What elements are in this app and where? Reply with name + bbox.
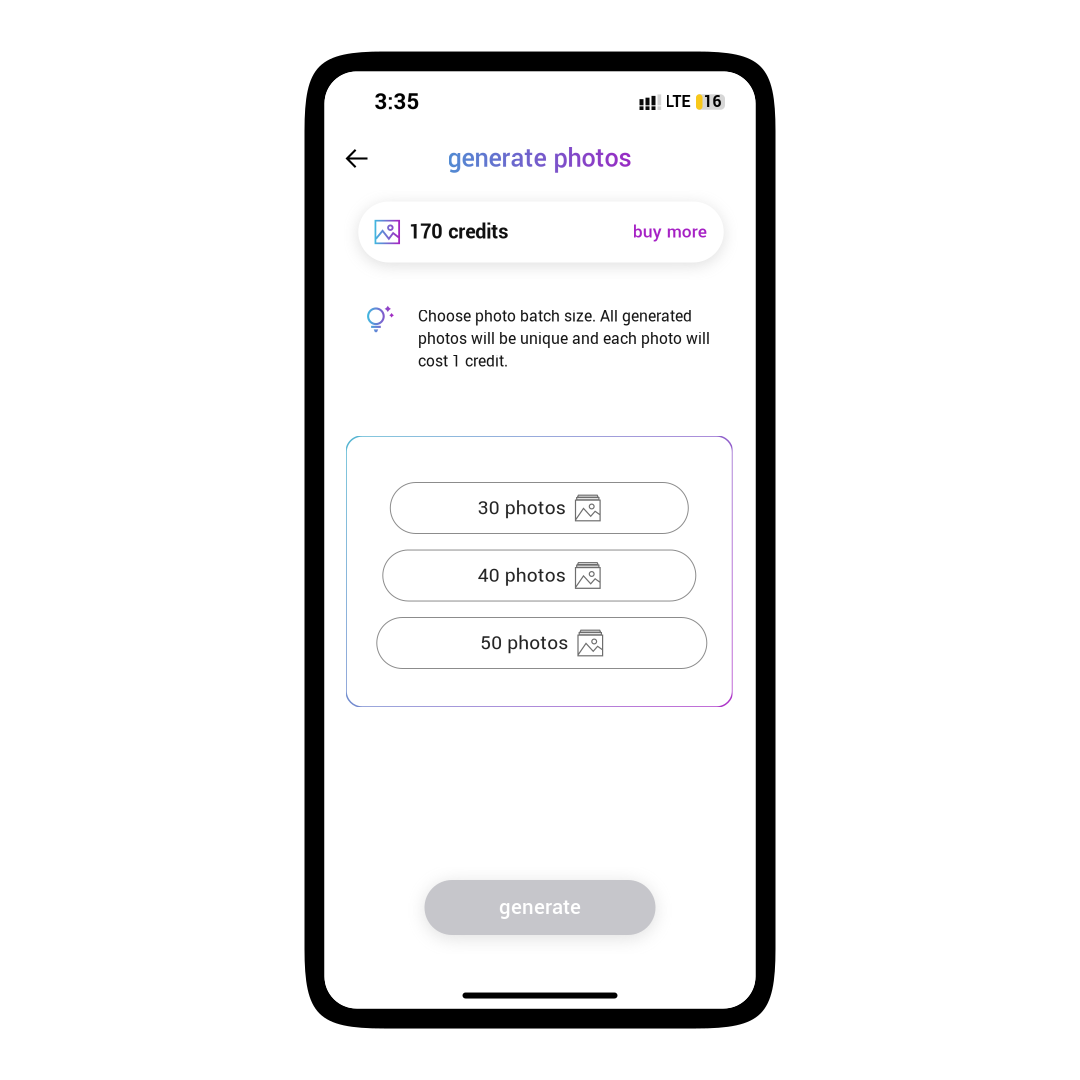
staticText: buy more (633, 219, 707, 245)
staticText: generate (499, 893, 581, 922)
button[interactable]: 170 credits (358, 201, 724, 262)
staticText: 3:35 (374, 86, 419, 118)
button[interactable]: generate (424, 880, 655, 935)
staticText: 40 photos (478, 562, 566, 589)
button[interactable]: 40 photos (383, 550, 696, 601)
button[interactable]: 50 photos (377, 617, 707, 668)
button[interactable]: 30 photos (390, 482, 688, 533)
staticText: LTE (665, 91, 690, 113)
staticText: 170 credits (409, 218, 508, 246)
button[interactable]: Back (335, 136, 379, 180)
staticText: Choose photo batch size. All generated p… (418, 305, 710, 373)
staticText: 30 photos (478, 494, 566, 522)
staticText: 50 photos (480, 629, 568, 657)
staticText: 16 (703, 91, 721, 113)
